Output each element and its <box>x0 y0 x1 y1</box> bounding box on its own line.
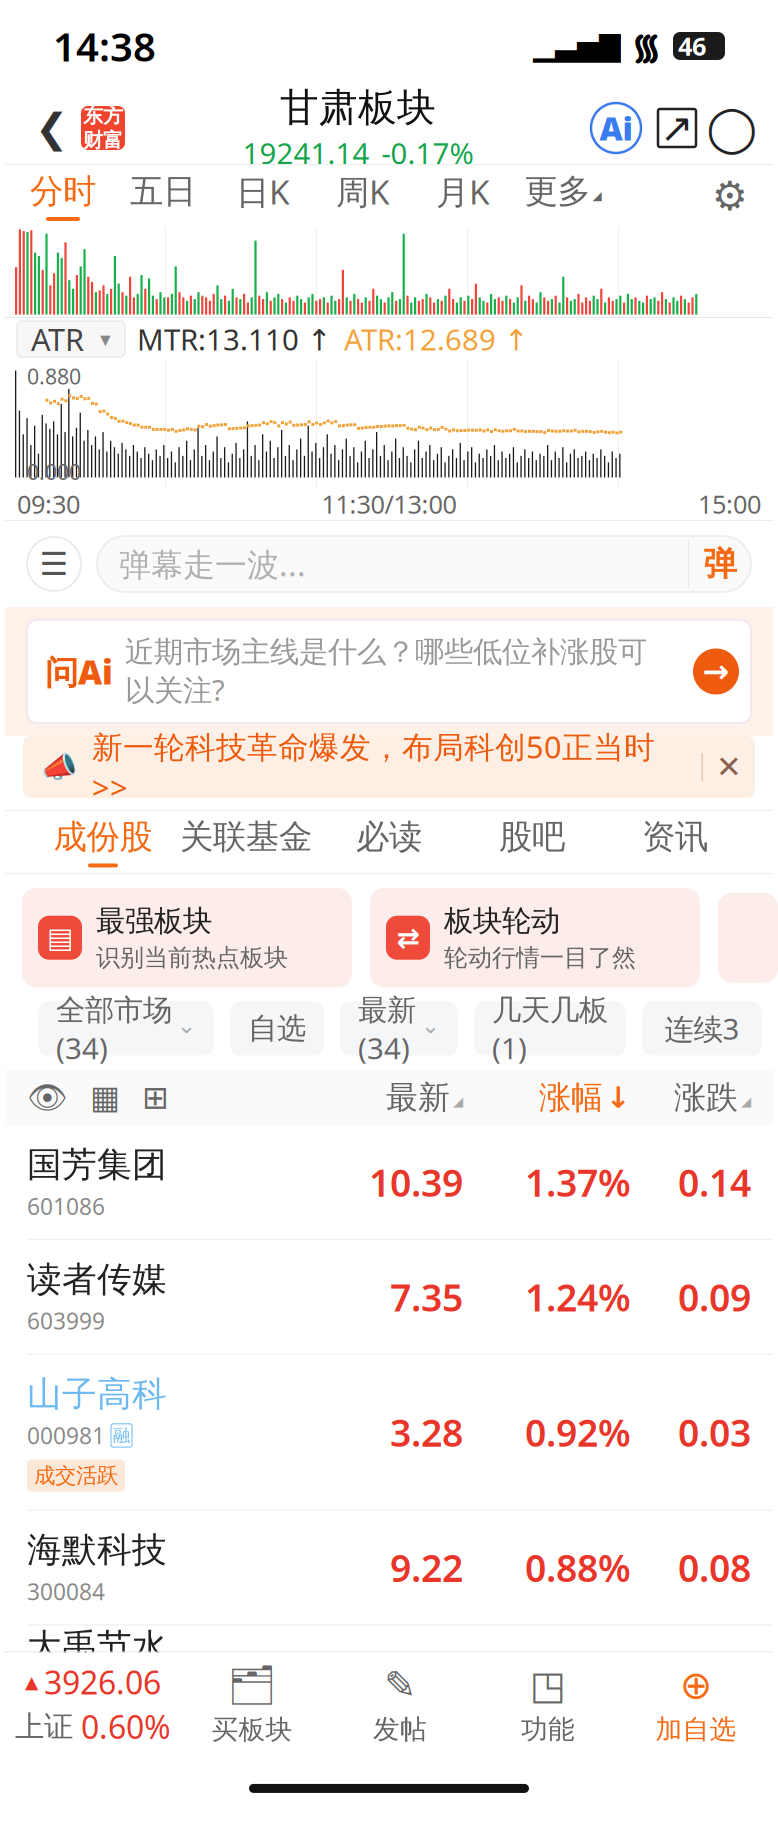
button[interactable]: Share <box>655 106 699 150</box>
button[interactable]: 五日 <box>113 171 213 221</box>
staticText: ⚙ <box>712 173 748 219</box>
staticText: 分时 <box>30 171 96 212</box>
staticText: ✕ <box>716 750 742 784</box>
staticText: → <box>702 653 729 690</box>
button[interactable]: 涨幅 <box>463 1078 631 1117</box>
staticText: ⌄ <box>421 1013 440 1038</box>
button[interactable]: 全部市场 (34) <box>38 1001 214 1055</box>
button[interactable]: Search <box>709 105 755 151</box>
button[interactable]: 添加 <box>142 1079 169 1116</box>
button[interactable]: 自选 <box>230 1001 324 1055</box>
staticText: ▁▃▅▇ <box>533 30 621 62</box>
button[interactable]: ◳ <box>474 1663 622 1746</box>
button[interactable]: 周K <box>313 169 413 223</box>
button[interactable]: 显示设置 <box>27 1079 68 1116</box>
staticText: ◢ <box>741 1094 751 1109</box>
button[interactable]: 📣 <box>23 726 701 808</box>
button[interactable]: AI 助手 <box>591 103 641 153</box>
staticText: 东方 <box>83 103 123 128</box>
staticText: 📣 <box>41 750 78 784</box>
staticText: ATR:12.689 ↑ <box>344 319 529 358</box>
button[interactable]: 布局 <box>90 1079 120 1116</box>
button[interactable]: ✎ <box>326 1663 474 1746</box>
staticText: 9.22 <box>390 1543 463 1592</box>
button[interactable]: 海默科技 <box>5 1511 773 1625</box>
button[interactable]: 🗂 <box>178 1663 326 1746</box>
staticText: 关联基金 <box>180 816 312 857</box>
button[interactable]: ⇄ <box>370 888 700 987</box>
staticText: 五日 <box>130 171 196 212</box>
staticText: 🗂 <box>227 1663 276 1707</box>
staticText: ↗ <box>660 105 694 151</box>
button[interactable]: 月K <box>413 169 513 223</box>
staticText: 0.09 <box>678 1272 751 1322</box>
staticText: 轮动行情一目了然 <box>444 943 636 972</box>
staticText: ☰ <box>39 546 68 582</box>
button[interactable]: 更多 <box>513 171 613 221</box>
staticText: 必读 <box>356 816 422 857</box>
staticText: 财富 <box>83 128 123 153</box>
button[interactable]: 最新 <box>315 1078 463 1117</box>
staticText: 0.92% <box>525 1407 631 1457</box>
staticText: 涨跌 <box>674 1078 738 1117</box>
button[interactable]: ▲ <box>8 1661 178 1748</box>
button[interactable]: 国芳集团 <box>5 1125 773 1240</box>
button[interactable]: 资讯 <box>603 816 746 867</box>
staticText: ↓ <box>606 1081 631 1114</box>
staticText: ⌄ <box>177 1013 196 1038</box>
button[interactable]: 问Ai <box>27 620 751 723</box>
staticText: ◢ <box>453 1094 463 1109</box>
button[interactable]: 成份股 <box>31 816 174 867</box>
staticText: 连续3 <box>664 1009 739 1048</box>
staticText: 0.08 <box>678 1543 751 1592</box>
button[interactable]: Back <box>23 97 81 159</box>
staticText: 山子高科 <box>27 1373 167 1415</box>
staticText: ATR <box>31 319 84 359</box>
button[interactable]: ATR <box>17 321 125 357</box>
staticText: ✎ <box>384 1663 416 1707</box>
staticText: ⊞ <box>142 1079 169 1116</box>
staticText: ᯾ <box>631 23 661 69</box>
button[interactable]: 弹幕列表 <box>27 537 81 591</box>
staticText: 11:30/13:00 <box>321 487 456 521</box>
button[interactable]: 东方财富 <box>81 106 125 150</box>
staticText: 0.880 <box>27 362 81 390</box>
staticText: 603999 <box>27 1306 105 1336</box>
button[interactable]: 读者传媒 <box>5 1240 773 1355</box>
staticText: 周K <box>336 169 390 214</box>
button[interactable]: 最新 (34) <box>340 1001 458 1055</box>
staticText: 0.14 <box>678 1157 751 1207</box>
button[interactable]: 必读 <box>317 816 460 867</box>
staticText: 新一轮科技革命爆发，布局科创50正当时>> <box>92 726 655 808</box>
button[interactable]: 连续3 <box>642 1001 762 1055</box>
button[interactable]: 关闭 <box>703 741 755 793</box>
button[interactable]: 分时 <box>13 171 113 221</box>
staticText: 板块轮动 <box>444 903 560 939</box>
staticText: 自选 <box>248 1010 306 1046</box>
staticText: 上证 <box>15 1709 73 1745</box>
button[interactable]: 关联基金 <box>174 816 317 867</box>
button[interactable]: ▤ <box>22 888 352 987</box>
staticText: 19241.14 <box>242 133 369 172</box>
button[interactable]: 日K <box>213 169 313 223</box>
staticText: 识别当前热点板块 <box>96 943 288 972</box>
button[interactable]: 设置 <box>701 167 759 225</box>
button[interactable]: 弹幕走一波... <box>97 536 751 592</box>
staticText: 1.24% <box>525 1272 631 1322</box>
button[interactable]: 涨跌 <box>631 1078 751 1117</box>
staticText: 7.35 <box>390 1272 463 1322</box>
staticText: ▤ <box>47 922 73 954</box>
button[interactable]: ⊕ <box>622 1663 770 1746</box>
button[interactable]: 股吧 <box>460 816 603 867</box>
staticText: ⇄ <box>396 922 419 954</box>
button[interactable]: 山子高科 <box>5 1355 773 1511</box>
staticText: 09:30 <box>17 487 80 521</box>
staticText: 问Ai <box>45 649 113 694</box>
staticText: 大禹节水 <box>27 1625 167 1668</box>
staticText: 融 <box>113 1425 130 1446</box>
staticText: 0.60% <box>81 1705 171 1748</box>
staticText: 日K <box>236 169 290 214</box>
staticText: 3926.06 <box>44 1661 161 1703</box>
button[interactable]: 几天几板 (1) <box>474 1001 626 1055</box>
staticText: Ai <box>599 107 632 149</box>
